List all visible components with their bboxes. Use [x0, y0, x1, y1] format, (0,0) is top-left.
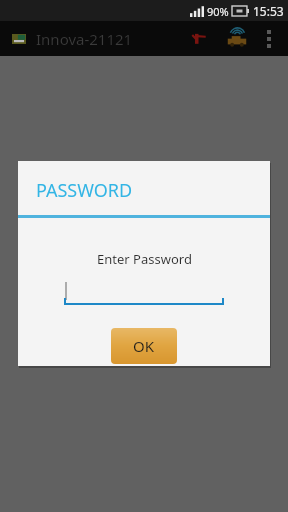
staticText: Enter Password [97, 250, 192, 268]
button[interactable]: Connect vehicle [220, 22, 254, 56]
staticText: 90% [207, 4, 229, 19]
button[interactable]: More options [254, 21, 284, 56]
button[interactable] [64, 280, 224, 306]
staticText: 15:53 [253, 3, 284, 19]
button[interactable]: OK [111, 328, 177, 364]
button[interactable]: Alerts [184, 24, 214, 54]
staticText: PASSWORD [36, 178, 133, 203]
staticText: OK [133, 336, 155, 356]
staticText: Innova-21121 [36, 29, 133, 49]
